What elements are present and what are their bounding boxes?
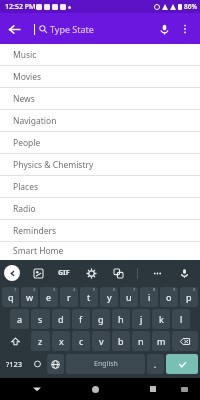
staticText: 1 (14, 287, 17, 292)
staticText: Physics & Chemistry (13, 159, 94, 171)
button[interactable]: g (92, 309, 110, 329)
staticText: 0 (193, 287, 196, 292)
button[interactable]: Enter (166, 354, 198, 374)
button[interactable]: Change language (47, 354, 64, 374)
button[interactable]: Movies (0, 66, 200, 88)
button[interactable]: z (31, 331, 50, 351)
button[interactable]: u (120, 287, 138, 307)
staticText: Smart Home (13, 245, 64, 257)
button[interactable]: Places (0, 176, 200, 198)
button[interactable]: News (0, 88, 200, 110)
button[interactable]: Backspace (172, 331, 198, 351)
staticText: 6 (113, 287, 116, 292)
button[interactable]: More (149, 265, 165, 281)
button[interactable]: Stickers (30, 265, 46, 281)
staticText: h (118, 313, 124, 325)
staticText: Music (13, 49, 37, 61)
button[interactable]: English (66, 354, 145, 374)
button[interactable]: c (72, 331, 90, 351)
button[interactable]: q (2, 287, 19, 307)
staticText: g (98, 313, 104, 325)
button[interactable]: GIF (56, 266, 72, 280)
button[interactable]: Shift (1, 330, 30, 352)
button[interactable]: More options (176, 20, 194, 38)
button[interactable]: n (132, 331, 150, 351)
button[interactable]: Translate (110, 265, 126, 281)
button[interactable]: Keyboard (176, 381, 192, 397)
staticText: b (118, 335, 124, 347)
button[interactable]: b (112, 331, 130, 351)
staticText: x (59, 335, 64, 347)
button[interactable]: a (10, 309, 29, 329)
staticText: r (67, 291, 71, 303)
button[interactable]: Recent apps (143, 379, 163, 399)
button[interactable]: Emoji (28, 352, 46, 376)
staticText: f (79, 313, 83, 325)
button[interactable]: y (100, 287, 118, 307)
staticText: m (157, 335, 166, 347)
button[interactable]: Physics & Chemistry (0, 154, 200, 176)
staticText: e (46, 291, 52, 303)
staticText: 9 (173, 287, 176, 292)
button[interactable]: s (31, 309, 50, 329)
button[interactable]: Navigation (0, 110, 200, 132)
button[interactable]: Radio (0, 198, 200, 220)
staticText: 12:52 PM (5, 2, 36, 12)
staticText: k (159, 313, 164, 325)
staticText: News (13, 93, 35, 105)
button[interactable]: Smart Home (0, 242, 200, 260)
button[interactable]: h (112, 309, 130, 329)
button[interactable]: d (52, 309, 70, 329)
button[interactable]: e (40, 287, 58, 307)
staticText: a (17, 313, 23, 325)
staticText: y (107, 291, 112, 303)
staticText: v (99, 335, 104, 347)
button[interactable]: Back (4, 265, 20, 281)
button[interactable]: f (72, 309, 90, 329)
staticText: 4 (73, 287, 76, 292)
staticText: English (94, 359, 118, 369)
staticText: q (8, 291, 14, 303)
button[interactable]: Music (0, 44, 200, 66)
button[interactable]: People (0, 132, 200, 154)
button[interactable]: Reminders (0, 220, 200, 242)
button[interactable]: j (132, 309, 150, 329)
staticText: ?123 (6, 359, 23, 369)
button[interactable]: p (180, 287, 198, 307)
staticText: z (38, 335, 43, 347)
button[interactable]: Voice input (176, 265, 192, 281)
button[interactable]: r (60, 287, 78, 307)
button[interactable]: Home (85, 379, 105, 399)
staticText: GIF (58, 268, 70, 278)
button[interactable]: ?123 (1, 352, 28, 376)
button[interactable]: Voice search (154, 19, 174, 39)
button[interactable]: i (140, 287, 158, 307)
button[interactable]: v (92, 331, 110, 351)
button[interactable]: x (52, 331, 70, 351)
staticText: w (26, 291, 34, 303)
staticText: j (140, 313, 143, 325)
button[interactable]: t (80, 287, 98, 307)
staticText: 3 (53, 287, 56, 292)
staticText: 2 (33, 287, 36, 292)
staticText: Reminders (13, 225, 57, 237)
staticText: n (138, 335, 144, 347)
staticText: p (186, 291, 192, 303)
button[interactable]: k (152, 309, 170, 329)
staticText: . (154, 359, 157, 370)
staticText: People (13, 137, 41, 149)
staticText: d (58, 313, 64, 325)
staticText: 5 (93, 287, 96, 292)
button[interactable]: . (147, 354, 164, 374)
staticText: c (79, 335, 84, 347)
button[interactable]: Back (0, 15, 28, 43)
staticText: Radio (13, 203, 36, 215)
button[interactable]: Settings (83, 265, 99, 281)
staticText: Type State (50, 23, 94, 35)
button[interactable]: w (21, 287, 38, 307)
button[interactable]: l (172, 309, 190, 329)
button[interactable]: Back (27, 379, 47, 399)
staticText: u (126, 291, 132, 303)
button[interactable]: m (152, 331, 170, 351)
button[interactable]: o (160, 287, 178, 307)
